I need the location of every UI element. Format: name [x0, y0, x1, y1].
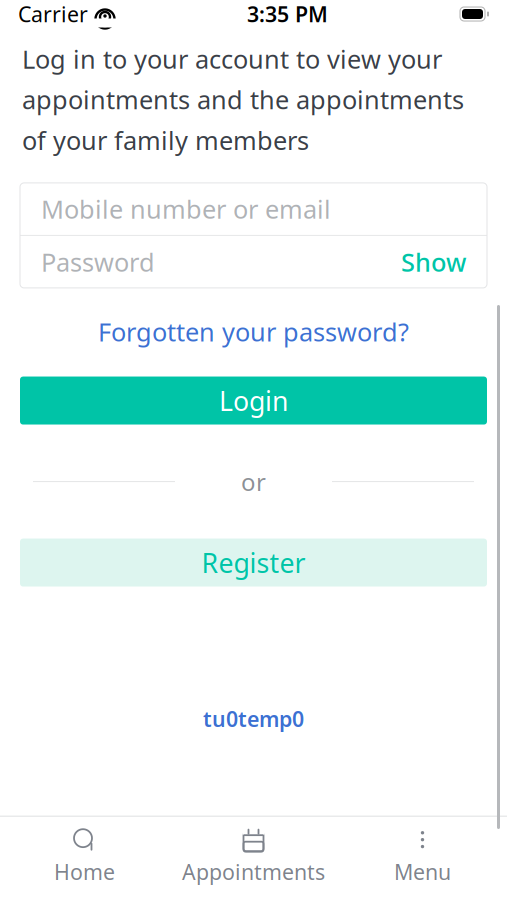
button[interactable]: Mobile number or email [20, 183, 487, 235]
staticText: Log in to your account to view your appo… [22, 42, 464, 157]
staticText: 3:35 PM [247, 0, 328, 28]
button[interactable]: Menu [338, 817, 507, 900]
staticText: Register [201, 545, 305, 580]
staticText: Appointments [182, 858, 325, 886]
button[interactable]: Password [20, 236, 372, 288]
staticText: Carrier [18, 0, 88, 28]
button[interactable]: Register [20, 539, 487, 587]
staticText: Menu [394, 858, 451, 886]
staticText: tu0temp0 [203, 705, 304, 733]
staticText: Login [219, 383, 288, 418]
staticText: Password [41, 245, 155, 279]
staticText: Home [54, 858, 115, 886]
button[interactable]: Login [20, 377, 487, 425]
staticText: Forgotten your password? [98, 315, 409, 348]
staticText: Mobile number or email [41, 192, 331, 226]
button[interactable]: Show [380, 236, 487, 288]
staticText: or [241, 466, 266, 497]
button[interactable]: Appointments [169, 817, 338, 900]
button[interactable]: Forgotten your password? [0, 307, 507, 356]
button[interactable]: Home [0, 817, 169, 900]
staticText: Show [401, 245, 466, 279]
